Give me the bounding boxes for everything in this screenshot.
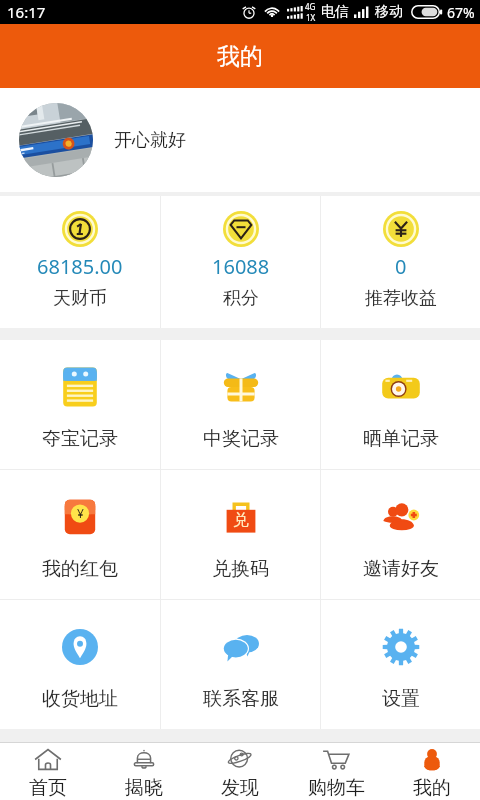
button[interactable]: 68185.00: [0, 196, 160, 328]
button[interactable]: 收货地址: [0, 600, 160, 729]
staticText: 67%: [447, 3, 475, 22]
button[interactable]: 中奖记录: [161, 340, 320, 469]
staticText: 电信: [321, 3, 349, 21]
staticText: 16:17: [7, 2, 46, 22]
staticText: 收货地址: [42, 687, 118, 711]
staticText: 我的红包: [42, 557, 118, 581]
staticText: 1X: [306, 12, 316, 23]
button[interactable]: 购物车: [288, 743, 384, 800]
button[interactable]: 16088: [161, 196, 320, 328]
staticText: 我的: [413, 776, 451, 800]
button[interactable]: 首页: [0, 743, 96, 800]
button[interactable]: ¥: [0, 470, 160, 599]
staticText: 设置: [382, 687, 420, 711]
button[interactable]: 开心就好: [0, 88, 480, 192]
staticText: 揭晓: [125, 776, 163, 800]
staticText: 兑: [233, 510, 249, 530]
staticText: 购物车: [308, 776, 365, 800]
staticText: 夺宝记录: [42, 427, 118, 451]
staticText: 开心就好: [114, 129, 186, 152]
button[interactable]: 我的: [384, 743, 480, 800]
staticText: 联系客服: [203, 687, 279, 711]
staticText: 16088: [212, 253, 270, 280]
staticText: 天财币: [53, 287, 107, 310]
button[interactable]: 设置: [321, 600, 480, 729]
staticText: 移动: [375, 3, 403, 21]
staticText: 我的: [217, 42, 263, 71]
button[interactable]: 晒单记录: [321, 340, 480, 469]
button[interactable]: 邀请好友: [321, 470, 480, 599]
staticText: 发现: [221, 776, 259, 800]
staticText: 推荐收益: [365, 287, 437, 310]
button[interactable]: 兑: [161, 470, 320, 599]
staticText: 68185.00: [37, 253, 123, 280]
button[interactable]: 0: [321, 196, 480, 328]
staticText: 兑换码: [212, 557, 269, 581]
staticText: 4G: [305, 1, 316, 12]
staticText: 0: [395, 253, 407, 280]
staticText: 积分: [223, 287, 259, 310]
button[interactable]: 揭晓: [96, 743, 192, 800]
staticText: 首页: [29, 776, 67, 800]
button[interactable]: 夺宝记录: [0, 340, 160, 469]
staticText: 中奖记录: [203, 427, 279, 451]
staticText: 晒单记录: [363, 427, 439, 451]
staticText: 邀请好友: [363, 557, 439, 581]
staticText: ¥: [77, 505, 84, 521]
button[interactable]: 联系客服: [161, 600, 320, 729]
button[interactable]: 发现: [192, 743, 288, 800]
